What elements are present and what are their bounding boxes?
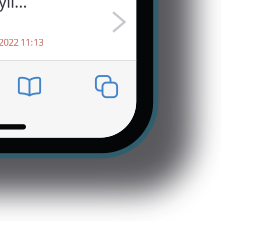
button[interactable]: Bookmarks: [2, 63, 56, 111]
staticText: 23. nov. 2022 11:13: [0, 36, 43, 48]
button[interactable]: Sommerhus til salg i Nordjyll…: [0, 0, 136, 60]
button[interactable]: Tabs: [79, 63, 133, 111]
staticText: Sommerhus til salg i Nordjyll…: [0, 0, 27, 12]
